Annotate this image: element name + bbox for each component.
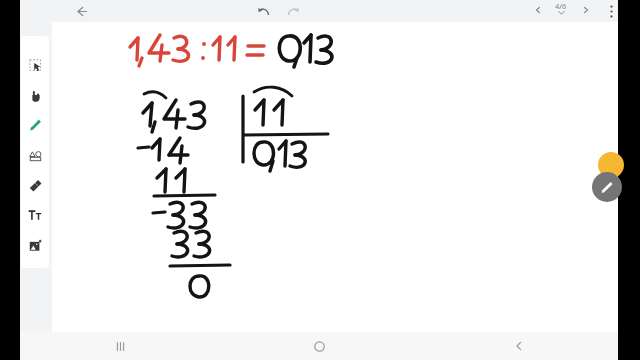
button[interactable]: Previous page (528, 0, 548, 20)
button[interactable]: Pen (21, 110, 49, 140)
button[interactable]: Undo (252, 0, 274, 22)
button[interactable]: 4/6 (548, 1, 574, 21)
button[interactable]: Recents (20, 332, 220, 360)
button[interactable]: Back (419, 332, 618, 360)
staticText: 4/6 (555, 1, 567, 11)
button[interactable]: Back (70, 0, 92, 22)
button[interactable]: Text (21, 200, 49, 230)
button[interactable]: Next page (576, 0, 596, 20)
button[interactable]: Edit (592, 172, 622, 202)
button[interactable]: Insert image (21, 230, 49, 260)
button[interactable]: Redo (282, 0, 304, 22)
button[interactable]: Home (220, 332, 419, 360)
button[interactable]: Shapes (21, 140, 49, 170)
button[interactable]: More options (600, 0, 622, 22)
button[interactable]: Pan (21, 80, 49, 110)
button[interactable]: Select (21, 50, 49, 80)
button[interactable]: Highlighter (598, 152, 624, 178)
button[interactable]: Eraser (21, 170, 49, 200)
